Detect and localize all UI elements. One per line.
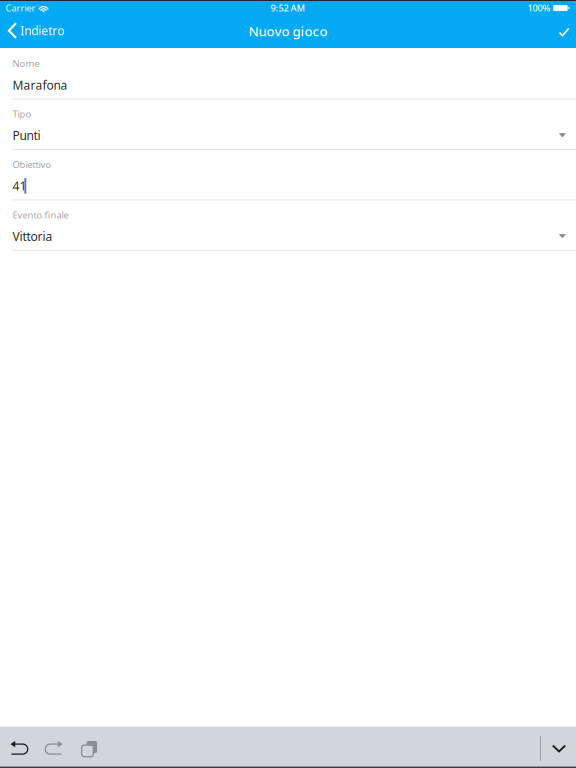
staticText: Nuovo gioco bbox=[248, 22, 327, 40]
button[interactable]: Annulla bbox=[1, 726, 35, 766]
staticText: Vittoria bbox=[12, 228, 52, 244]
staticText: 41 bbox=[12, 178, 26, 194]
button[interactable]: Evento finale bbox=[0, 199, 576, 250]
staticText: Evento finale bbox=[12, 209, 68, 221]
button[interactable]: Salva bbox=[545, 15, 576, 48]
button[interactable]: Nome bbox=[0, 48, 576, 98]
staticText: Marafona bbox=[12, 77, 67, 93]
staticText: 100% bbox=[527, 2, 550, 14]
staticText: Carrier bbox=[5, 2, 35, 14]
staticText: Indietro bbox=[20, 22, 64, 38]
button[interactable]: Incolla bbox=[72, 726, 106, 766]
button[interactable]: Ripristina bbox=[37, 726, 71, 766]
staticText: Nome bbox=[12, 57, 39, 70]
button[interactable]: Indietro bbox=[0, 15, 72, 48]
staticText: 9:52 AM bbox=[270, 2, 305, 14]
button[interactable]: Tipo bbox=[0, 98, 576, 149]
button[interactable]: Nascondi tastiera bbox=[542, 726, 576, 766]
staticText: Tipo bbox=[12, 108, 31, 120]
button[interactable]: Obiettivo bbox=[0, 149, 576, 199]
staticText: Punti bbox=[12, 127, 40, 143]
staticText: Obiettivo bbox=[12, 158, 51, 171]
